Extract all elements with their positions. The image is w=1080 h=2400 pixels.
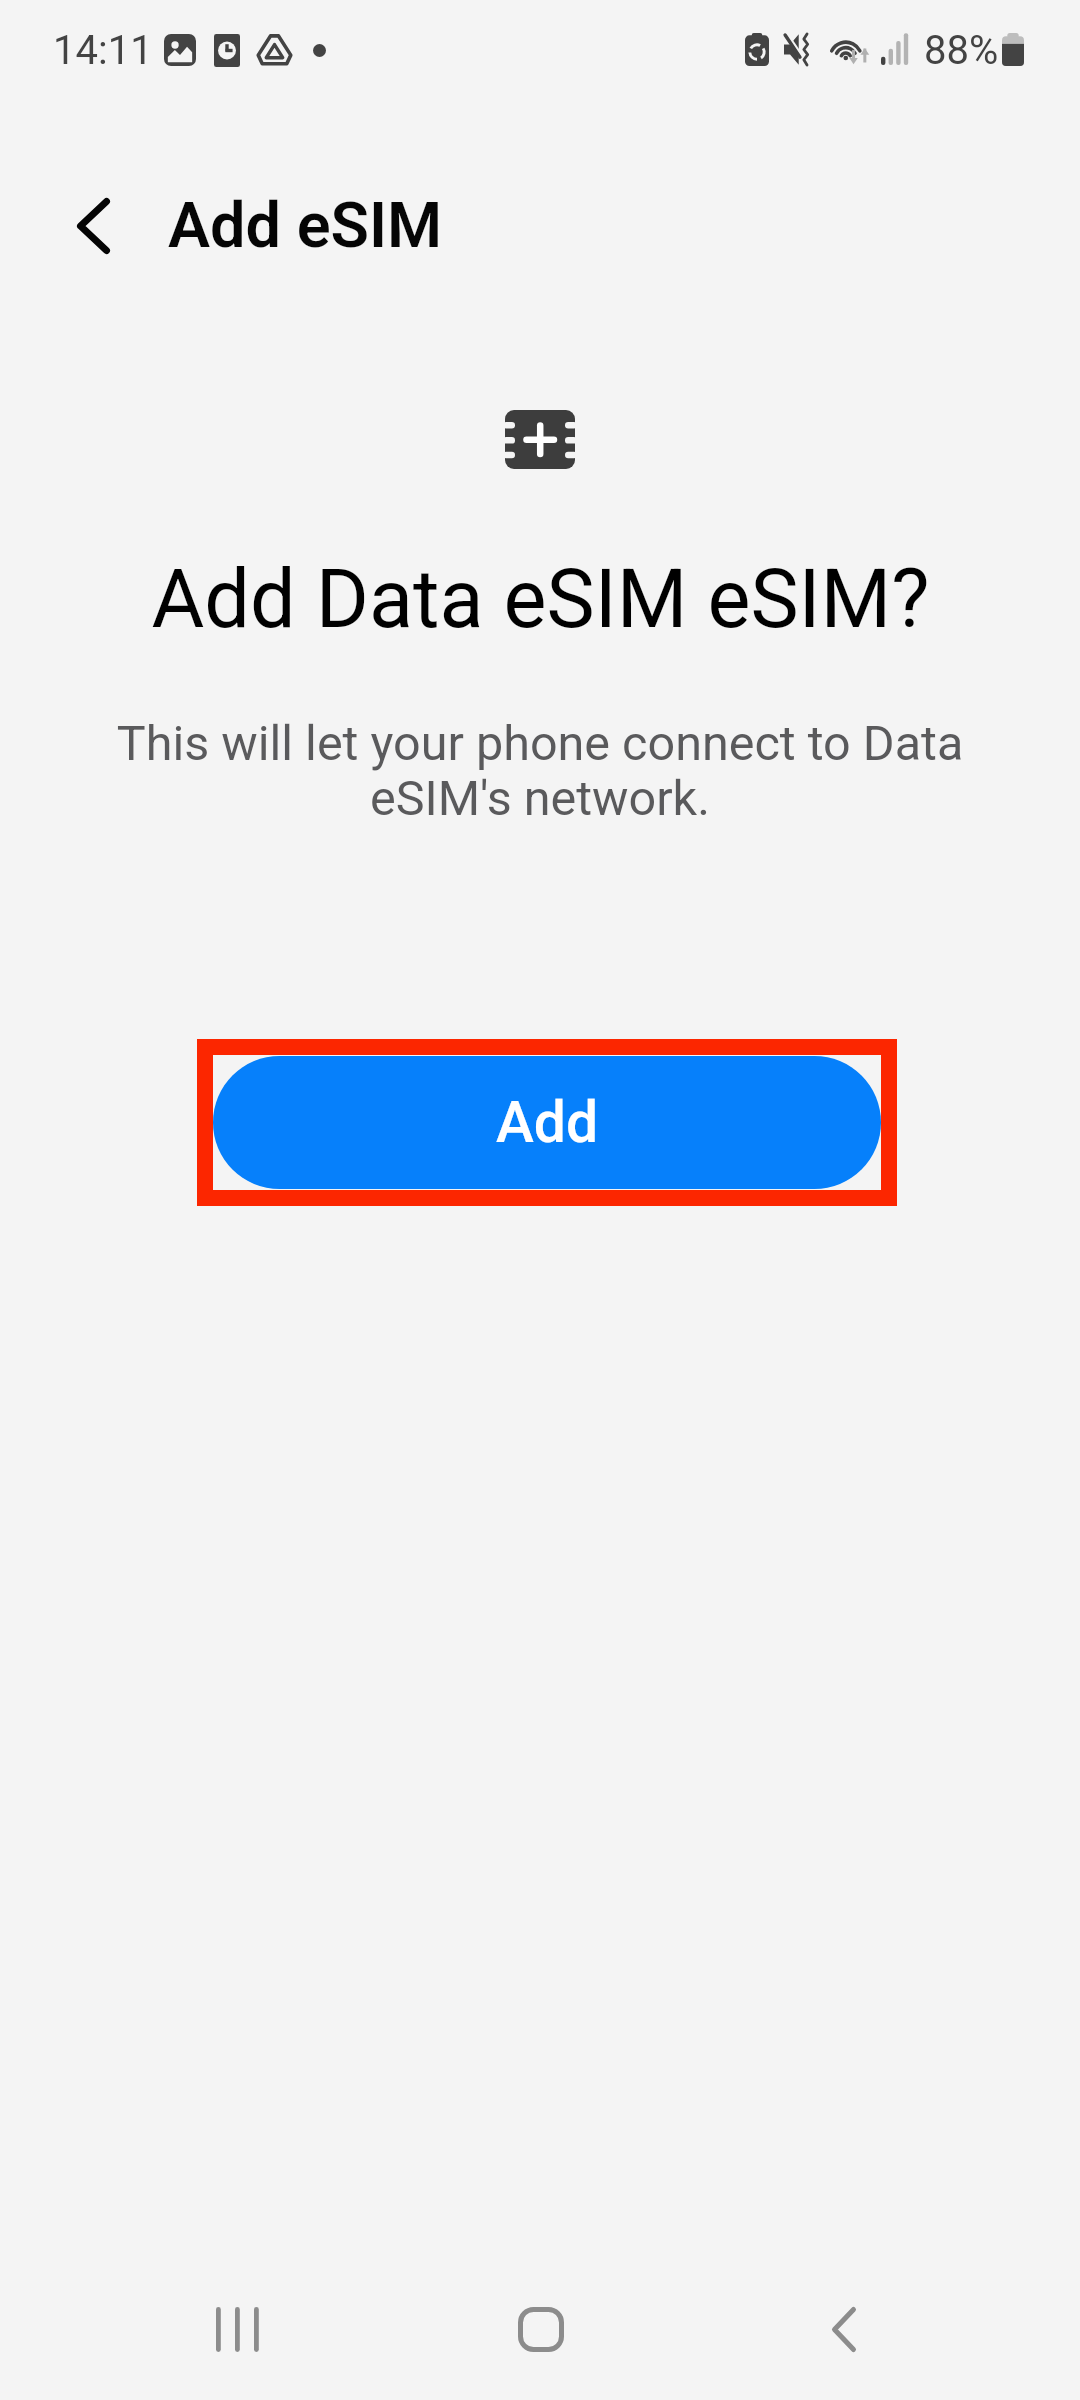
button[interactable]: Back	[754, 2264, 934, 2395]
staticText: Add Data eSIM eSIM?	[151, 552, 930, 647]
staticText: Add	[496, 1089, 599, 1156]
staticText: 14:11	[53, 27, 153, 74]
button[interactable]: Navigate up	[18, 151, 168, 301]
staticText: Add eSIM	[168, 189, 443, 263]
button[interactable]: Recent apps	[149, 2264, 329, 2395]
button[interactable]: Home	[451, 2264, 631, 2395]
staticText: 88%	[924, 27, 999, 74]
staticText: This will let your phone connect to Data…	[40, 715, 1040, 826]
button[interactable]: Add	[213, 1056, 881, 1189]
